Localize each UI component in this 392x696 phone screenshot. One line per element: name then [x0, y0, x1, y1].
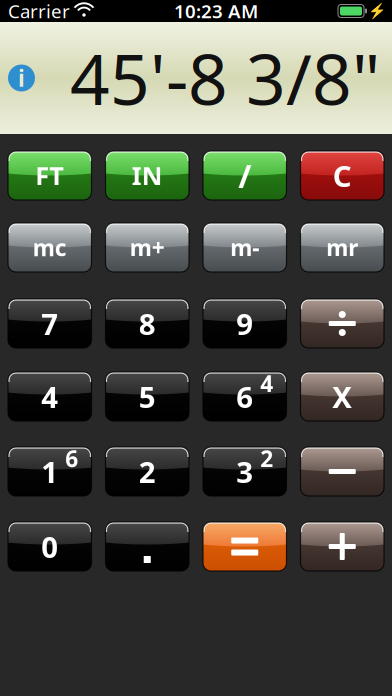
button[interactable]: Divide: [300, 299, 384, 348]
staticText: 3: [236, 452, 253, 491]
staticText: 4: [260, 368, 273, 398]
button[interactable]: Minus: [300, 447, 384, 496]
button[interactable]: C: [300, 151, 384, 200]
button[interactable]: m+: [105, 223, 189, 272]
button[interactable]: 1: [8, 447, 91, 496]
button[interactable]: 6: [203, 372, 286, 421]
button[interactable]: 0: [8, 522, 91, 571]
staticText: 6: [65, 443, 78, 473]
button[interactable]: 5: [105, 372, 189, 421]
staticText: m-: [230, 232, 259, 262]
button[interactable]: 7: [8, 299, 91, 348]
staticText: C: [333, 156, 352, 195]
staticText: 8: [139, 304, 156, 343]
staticText: 10:23 AM: [174, 0, 258, 23]
button[interactable]: 8: [105, 299, 189, 348]
staticText: 0: [41, 527, 58, 566]
button[interactable]: 3: [203, 447, 286, 496]
staticText: 2: [260, 443, 273, 473]
button[interactable]: FT: [8, 151, 91, 200]
button[interactable]: point: [105, 522, 189, 571]
button[interactable]: Info: [8, 64, 35, 91]
button[interactable]: 2: [105, 447, 189, 496]
staticText: /: [238, 154, 251, 197]
staticText: i: [18, 63, 25, 93]
button[interactable]: X: [300, 372, 384, 421]
staticText: m+: [130, 232, 165, 262]
staticText: 1: [41, 452, 58, 491]
button[interactable]: =: [203, 522, 286, 571]
staticText: 4: [41, 377, 58, 416]
staticText: mr: [326, 232, 358, 262]
button[interactable]: IN: [105, 151, 189, 200]
button[interactable]: mc: [8, 223, 91, 272]
staticText: 9: [236, 304, 253, 343]
button[interactable]: mr: [300, 223, 384, 272]
button[interactable]: /: [203, 151, 286, 200]
staticText: IN: [132, 159, 163, 192]
staticText: ⚡: [368, 3, 386, 19]
button[interactable]: 4: [8, 372, 91, 421]
staticText: mc: [33, 232, 67, 262]
staticText: FT: [35, 159, 64, 192]
staticText: 7: [41, 304, 58, 343]
staticText: 5: [139, 377, 156, 416]
staticText: Carrier: [8, 0, 70, 23]
button[interactable]: 9: [203, 299, 286, 348]
button[interactable]: Plus: [300, 522, 384, 571]
staticText: X: [332, 377, 352, 416]
staticText: 45'-8 3/8": [70, 32, 380, 124]
staticText: 6: [236, 377, 253, 416]
staticText: 2: [139, 452, 156, 491]
button[interactable]: m-: [203, 223, 286, 272]
